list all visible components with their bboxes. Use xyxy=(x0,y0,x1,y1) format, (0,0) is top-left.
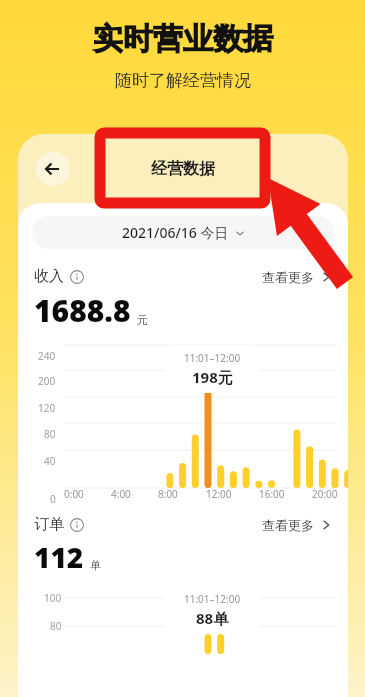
staticText: 88单 xyxy=(196,608,229,628)
staticText: 查看更多 xyxy=(262,517,314,533)
staticText: 12:00 xyxy=(206,487,232,501)
staticText: 11:01–12:00 xyxy=(184,351,241,365)
staticText: 198元 xyxy=(192,367,233,387)
staticText: 112 xyxy=(34,538,84,576)
staticText: 实时营业数据 xyxy=(93,20,273,58)
staticText: 16:00 xyxy=(259,487,285,501)
staticText: 0:00 xyxy=(64,487,84,501)
button[interactable]: Info xyxy=(70,270,84,284)
staticText: 随时了解经营情况 xyxy=(115,70,251,91)
button[interactable]: Info xyxy=(70,518,84,532)
staticText: 8:00 xyxy=(158,487,178,501)
staticText: 订单 xyxy=(34,515,64,534)
button[interactable]: 2021/06/16 今日 xyxy=(32,216,334,249)
staticText: 40 xyxy=(44,454,56,468)
button[interactable]: 查看更多 xyxy=(262,269,332,285)
staticText: 0 xyxy=(50,492,56,506)
staticText: 查看更多 xyxy=(262,269,314,285)
staticText: 80 xyxy=(44,427,56,441)
staticText: 120 xyxy=(38,401,56,415)
staticText: 100 xyxy=(44,591,62,605)
staticText: 2021/06/16 今日 xyxy=(122,223,229,242)
button[interactable]: Back xyxy=(36,152,70,186)
staticText: 20:00 xyxy=(312,487,338,501)
staticText: 11:01–12:00 xyxy=(184,592,241,606)
staticText: 80 xyxy=(50,619,62,633)
staticText: 收入 xyxy=(34,267,64,286)
staticText: 经营数据 xyxy=(151,159,215,179)
staticText: 1688.8 xyxy=(34,290,131,331)
staticText: 240 xyxy=(38,349,56,363)
staticText: 单 xyxy=(90,558,101,572)
staticText: 元 xyxy=(137,313,148,327)
staticText: 4:00 xyxy=(111,487,131,501)
button[interactable]: 查看更多 xyxy=(262,517,332,533)
staticText: 200 xyxy=(38,374,56,388)
button[interactable]: 经营数据 xyxy=(151,159,215,179)
